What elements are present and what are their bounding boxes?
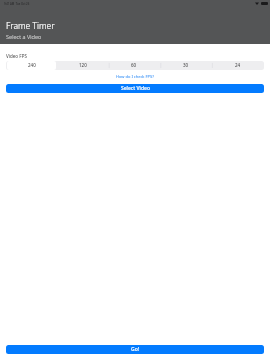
button[interactable]: 120: [58, 61, 107, 70]
staticText: 24: [235, 62, 241, 68]
staticText: 240: [28, 62, 36, 68]
staticText: 30: [183, 62, 189, 68]
button[interactable]: 240: [7, 61, 56, 70]
button[interactable]: Select Video: [6, 84, 264, 93]
staticText: Select a Video: [6, 33, 42, 41]
staticText: 120: [79, 62, 87, 68]
staticText: Frame Timer: [6, 20, 55, 32]
button[interactable]: Go!: [6, 345, 264, 354]
button[interactable]: 30: [161, 61, 211, 70]
staticText: Select Video: [121, 85, 150, 92]
staticText: 9:41 AM Tue Oct 26: [4, 2, 30, 6]
button[interactable]: 24: [213, 61, 263, 70]
staticText: 60: [131, 62, 137, 68]
button[interactable]: How do I check FPS?: [116, 74, 154, 79]
button[interactable]: 60: [109, 61, 159, 70]
staticText: Video FPS: [6, 53, 27, 59]
staticText: Go!: [131, 346, 140, 353]
